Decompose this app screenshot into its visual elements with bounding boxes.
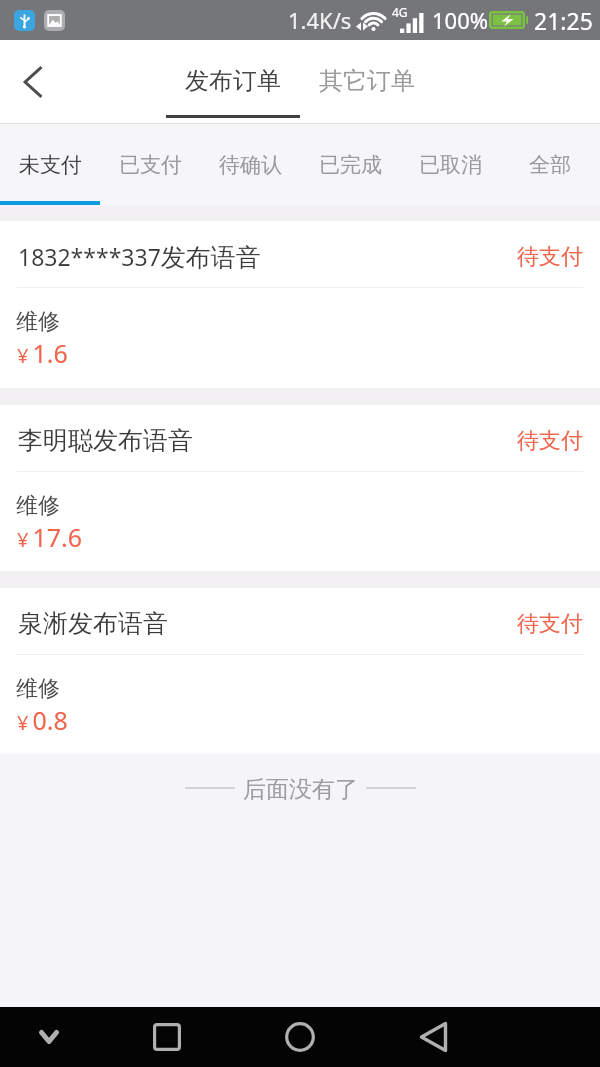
staticText: 已完成 bbox=[319, 152, 382, 178]
staticText: 全部 bbox=[529, 152, 571, 178]
staticText: 李明聪发布语音 bbox=[18, 425, 193, 456]
button[interactable]: 未支付 bbox=[0, 124, 100, 206]
staticText: 4G bbox=[392, 4, 408, 20]
staticText: 维修 bbox=[16, 308, 60, 336]
staticText: 待支付 bbox=[517, 243, 583, 271]
staticText: 维修 bbox=[16, 675, 60, 703]
staticText: ¥0.8 bbox=[17, 703, 68, 737]
button[interactable]: 全部 bbox=[500, 124, 600, 206]
staticText: 维修 bbox=[16, 492, 60, 520]
staticText: 待支付 bbox=[517, 427, 583, 455]
button[interactable]: 李明聪发布语音 bbox=[0, 405, 600, 571]
button[interactable]: Home bbox=[233, 1007, 367, 1067]
button[interactable]: Back bbox=[367, 1007, 500, 1067]
staticText: 已取消 bbox=[419, 152, 482, 178]
staticText: 待支付 bbox=[517, 610, 583, 638]
button[interactable]: 已完成 bbox=[300, 124, 400, 206]
staticText: 已支付 bbox=[119, 152, 182, 178]
button[interactable]: 发布订单 bbox=[166, 66, 300, 118]
button[interactable]: 1832****337发布语音 bbox=[0, 221, 600, 388]
button[interactable]: 其它订单 bbox=[319, 66, 415, 96]
button[interactable]: 待确认 bbox=[200, 124, 300, 206]
staticText: 泉淅发布语音 bbox=[18, 608, 168, 639]
staticText: ¥1.6 bbox=[17, 336, 68, 370]
button[interactable]: Back bbox=[0, 40, 66, 124]
button[interactable]: Hide keyboard bbox=[0, 1007, 149, 1067]
staticText: ¥17.6 bbox=[17, 520, 83, 554]
staticText: 100% bbox=[432, 5, 489, 35]
button[interactable]: 已支付 bbox=[100, 124, 200, 206]
button[interactable]: 泉淅发布语音 bbox=[0, 588, 600, 754]
button[interactable]: 已取消 bbox=[400, 124, 500, 206]
staticText: 1832****337发布语音 bbox=[18, 241, 261, 273]
staticText: 21:25 bbox=[534, 5, 593, 36]
staticText: 其它订单 bbox=[319, 66, 415, 96]
staticText: 后面没有了 bbox=[243, 775, 358, 801]
staticText: 待确认 bbox=[219, 152, 282, 178]
staticText: 1.4K/s bbox=[288, 5, 352, 35]
staticText: 未支付 bbox=[19, 152, 82, 178]
button[interactable]: Recent apps bbox=[100, 1007, 233, 1067]
staticText: 发布订单 bbox=[185, 66, 281, 96]
